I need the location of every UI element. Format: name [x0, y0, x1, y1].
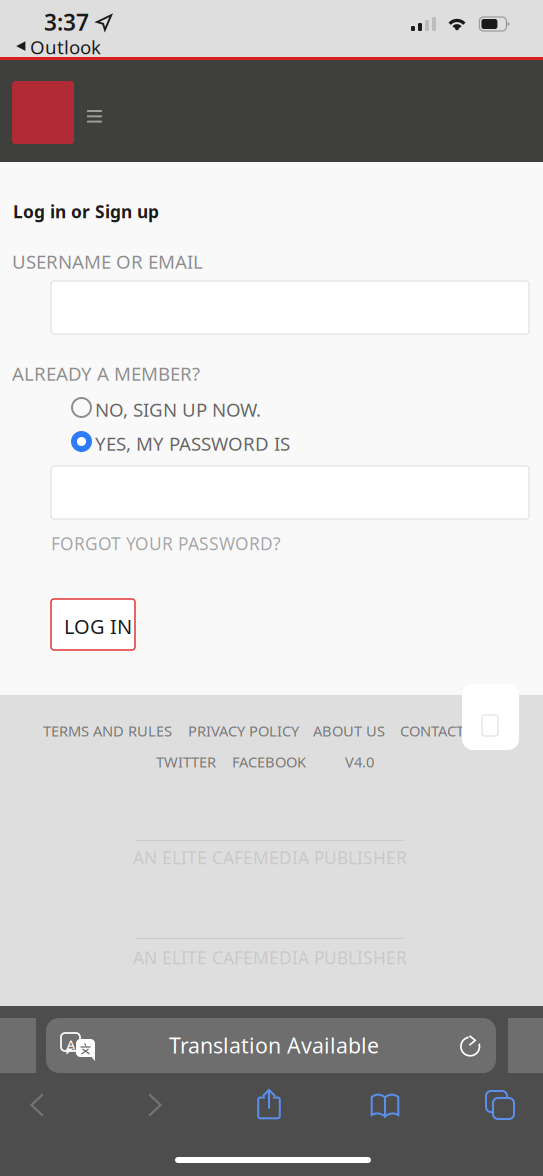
staticText: Translation Available [169, 1031, 379, 1059]
button[interactable]: ABOUT US [0, 0, 393, 746]
button[interactable]: Share [247, 1084, 291, 1124]
button[interactable]: PRIVACY POLICY [0, 0, 307, 746]
staticText: TWITTER [156, 752, 216, 771]
staticText: AN ELITE CAFEMEDIA PUBLISHER [133, 946, 407, 969]
staticText: Outlook [30, 35, 101, 59]
staticText: AN ELITE CAFEMEDIA PUBLISHER [133, 846, 407, 869]
button[interactable]: YES, MY PASSWORD IS [0, 426, 300, 460]
staticText: NO, SIGN UP NOW. [95, 397, 261, 422]
staticText: LOG IN [64, 613, 132, 640]
button[interactable]: Widget [462, 684, 519, 750]
staticText: USERNAME OR EMAIL [12, 249, 203, 274]
button[interactable]: FORGOT YOUR PASSWORD? [0, 526, 291, 561]
staticText: ABOUT US [313, 721, 385, 740]
button[interactable]: TWITTER [0, 0, 224, 777]
button[interactable]: FACEBOOK [0, 0, 314, 777]
staticText: YES, MY PASSWORD IS [95, 431, 290, 456]
staticText: FACEBOOK [232, 752, 306, 771]
staticText: FORGOT YOUR PASSWORD? [51, 532, 281, 555]
button[interactable]: Home [12, 81, 74, 144]
staticText: ALREADY A MEMBER? [12, 361, 200, 386]
button[interactable]: A [46, 1018, 496, 1073]
staticText: TERMS AND RULES [43, 721, 172, 740]
staticText: V4.0 [345, 752, 374, 771]
button[interactable]: Bookmarks [363, 1085, 407, 1125]
staticText: CONTACT [400, 721, 464, 740]
button[interactable]: Forward [133, 1085, 177, 1125]
staticText: 3:37 [44, 7, 89, 37]
button[interactable]: CONTACT [0, 0, 472, 746]
button[interactable]: NO, SIGN UP NOW. [0, 392, 300, 426]
staticText: Log in or Sign up [13, 200, 159, 223]
button[interactable]: Back to Outlook [0, 36, 120, 58]
button[interactable]: LOG IN [51, 599, 135, 650]
button[interactable]: TERMS AND RULES [0, 0, 180, 746]
staticText: A [66, 1035, 75, 1053]
button[interactable]: Menu [77, 103, 112, 137]
button[interactable]: Tabs [478, 1085, 522, 1125]
staticText: PRIVACY POLICY [188, 721, 299, 740]
button[interactable]: Back [15, 1085, 59, 1125]
